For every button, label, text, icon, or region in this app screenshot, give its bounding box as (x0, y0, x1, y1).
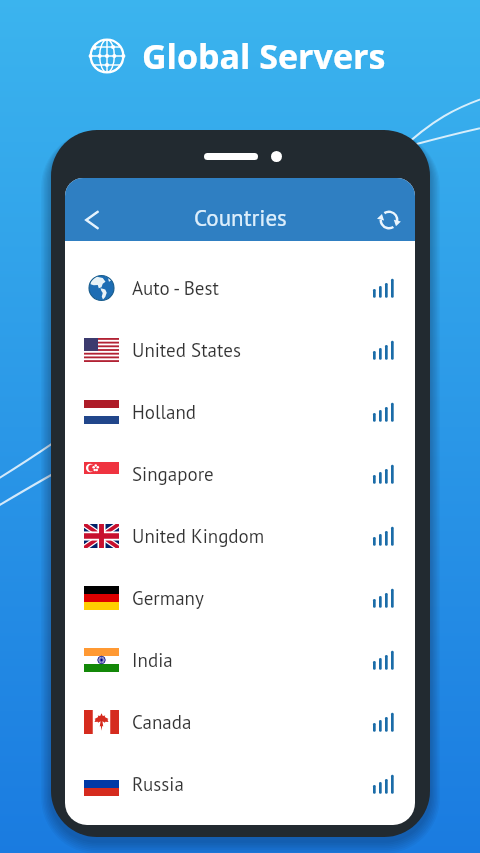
button[interactable]: Germany (65, 567, 415, 629)
staticText: Auto - Best (132, 276, 219, 301)
button[interactable]: Singapore (65, 443, 415, 505)
button[interactable]: Russia (65, 753, 415, 815)
staticText: Canada (132, 710, 192, 735)
button[interactable]: United States (65, 319, 415, 381)
staticText: United States (132, 338, 241, 363)
staticText: United Kingdom (132, 524, 265, 549)
staticText: Global Servers (142, 33, 386, 79)
staticText: India (132, 648, 173, 673)
button[interactable]: Back (69, 197, 114, 242)
button[interactable]: Refresh (366, 197, 411, 242)
staticText: Singapore (132, 462, 214, 487)
staticText: Russia (132, 772, 184, 797)
button[interactable]: Auto - Best (65, 257, 415, 319)
button[interactable]: Canada (65, 691, 415, 753)
button[interactable]: Holland (65, 381, 415, 443)
staticText: Countries (194, 203, 287, 233)
staticText: Germany (132, 586, 204, 611)
button[interactable]: United Kingdom (65, 505, 415, 567)
staticText: Holland (132, 400, 197, 425)
button[interactable]: India (65, 629, 415, 691)
